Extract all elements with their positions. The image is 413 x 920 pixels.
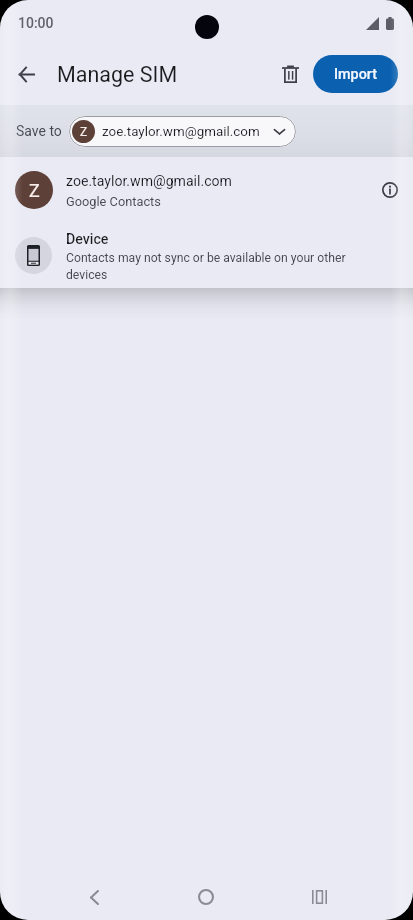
button[interactable]: Recent apps [291, 869, 347, 920]
staticText: Google Contacts [66, 194, 161, 209]
staticText: Save to [16, 123, 62, 139]
staticText: Manage SIM [57, 62, 178, 87]
staticText: 10:00 [18, 15, 54, 31]
button[interactable]: Device [0, 223, 413, 288]
staticText: Z [80, 125, 88, 139]
staticText: zoe.taylor.wm@gmail.com [102, 124, 260, 140]
button[interactable]: Account info [370, 170, 410, 210]
button[interactable]: Import [313, 55, 398, 93]
button[interactable]: Home [178, 869, 234, 920]
staticText: zoe.taylor.wm@gmail.com [66, 173, 232, 190]
staticText: Device [66, 231, 109, 248]
button[interactable]: Delete [268, 52, 312, 96]
button[interactable]: Z [69, 116, 296, 147]
button[interactable]: Back [66, 869, 122, 920]
staticText: Contacts may not sync or be available on… [66, 251, 356, 282]
staticText: Import [334, 66, 378, 83]
button[interactable]: Navigate up [4, 52, 49, 97]
button[interactable]: Z [0, 157, 413, 223]
staticText: Z [29, 180, 40, 201]
